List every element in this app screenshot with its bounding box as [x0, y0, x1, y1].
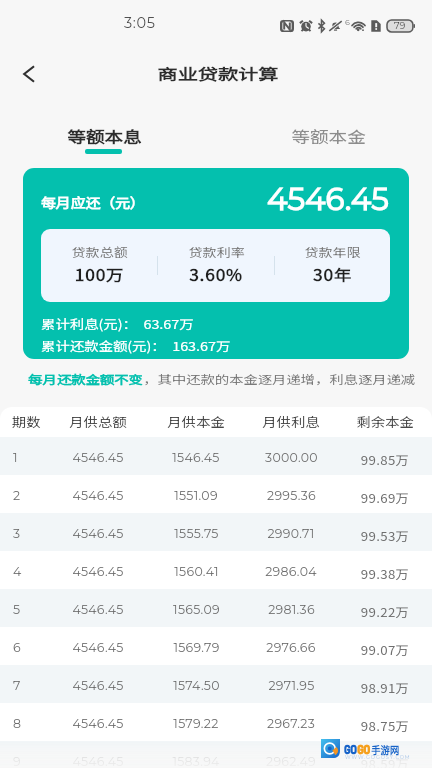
staticText: 4546.45: [72, 678, 124, 693]
staticText: 6: [345, 17, 350, 27]
button[interactable]: 等额本息: [40, 112, 168, 157]
staticText: 累计利息(元)： 63.67万: [41, 314, 194, 332]
staticText: 1551.09: [174, 488, 218, 503]
staticText: 4546.45: [72, 716, 124, 731]
button[interactable]: 8: [0, 703, 432, 741]
button[interactable]: 9: [0, 741, 432, 768]
staticText: 4546.45: [72, 450, 124, 465]
staticText: 9: [13, 754, 21, 768]
staticText: 等额本金: [291, 124, 366, 147]
staticText: 4546.45: [267, 180, 389, 218]
button[interactable]: 等额本金: [264, 112, 392, 157]
staticText: 累计还款金额(元)： 163.67万: [41, 336, 231, 354]
staticText: 99.53万: [361, 526, 409, 544]
staticText: 4546.45: [72, 754, 124, 768]
staticText: 1560.41: [174, 564, 219, 579]
staticText: 剩余本金: [356, 412, 414, 431]
staticText: 2981.36: [268, 602, 315, 617]
staticText: 4546.45: [72, 640, 124, 655]
staticText: 5: [13, 602, 21, 617]
staticText: 1565.09: [173, 602, 220, 617]
staticText: 2967.23: [267, 716, 315, 731]
staticText: 月供总额: [69, 412, 127, 431]
button[interactable]: 6: [0, 627, 432, 665]
staticText: 1555.75: [174, 526, 219, 541]
button[interactable]: 1: [0, 437, 432, 475]
staticText: 1: [13, 450, 18, 465]
staticText: 30年: [313, 263, 352, 285]
staticText: 99.85万: [361, 450, 409, 468]
staticText: 2976.66: [266, 640, 316, 655]
button[interactable]: 3: [0, 513, 432, 551]
staticText: 98.91万: [361, 678, 409, 696]
staticText: 贷款总额: [71, 243, 128, 260]
button[interactable]: Back: [12, 58, 44, 90]
button[interactable]: 7: [0, 665, 432, 703]
staticText: 1569.79: [173, 640, 220, 655]
staticText: 1583.94: [172, 754, 220, 768]
staticText: 99.38万: [361, 564, 409, 582]
staticText: 等额本息: [67, 124, 142, 147]
staticText: 99.07万: [361, 640, 409, 658]
staticText: 3.60%: [189, 263, 243, 285]
staticText: 4: [13, 564, 22, 579]
staticText: 4546.45: [72, 526, 124, 541]
staticText: 99.69万: [361, 488, 409, 506]
staticText: 99.22万: [361, 602, 409, 620]
staticText: 商业贷款计算: [157, 62, 279, 84]
staticText: 1546.45: [172, 450, 220, 465]
staticText: 1574.50: [173, 678, 220, 693]
staticText: 1579.22: [173, 716, 219, 731]
staticText: 期数: [11, 412, 40, 431]
staticText: 2971.95: [268, 678, 315, 693]
staticText: 2986.04: [265, 564, 317, 579]
staticText: 7: [13, 678, 21, 693]
staticText: 3: [13, 526, 21, 541]
staticText: 4546.45: [72, 488, 124, 503]
staticText: 4546.45: [72, 602, 124, 617]
staticText: 100万: [74, 263, 125, 285]
button[interactable]: 5: [0, 589, 432, 627]
staticText: 2995.36: [267, 488, 316, 503]
staticText: GO: [344, 740, 357, 757]
staticText: 月供利息: [262, 412, 320, 431]
staticText: ，其中还款的本金逐月递增，利息逐月递减: [143, 371, 416, 388]
staticText: 每月应还（元）: [41, 192, 145, 212]
staticText: WWW.GOGOSY.COM: [345, 754, 411, 760]
staticText: 3000.00: [265, 450, 318, 465]
staticText: 贷款利率: [188, 243, 245, 260]
button[interactable]: 2: [0, 475, 432, 513]
staticText: 手游网: [371, 742, 399, 757]
staticText: 每月还款金额不变: [28, 371, 143, 388]
staticText: 2: [13, 488, 21, 503]
staticText: 2962.49: [266, 754, 316, 768]
staticText: 8: [13, 716, 21, 731]
staticText: 2990.71: [267, 526, 315, 541]
button[interactable]: 4: [0, 551, 432, 589]
staticText: 3:05: [124, 14, 156, 32]
staticText: 98.75万: [361, 716, 409, 734]
staticText: GO: [357, 740, 370, 757]
staticText: 98.59万: [361, 754, 409, 768]
staticText: 6: [13, 640, 21, 655]
staticText: 贷款年限: [304, 243, 361, 260]
staticText: 79: [394, 20, 406, 32]
staticText: 4546.45: [72, 564, 124, 579]
staticText: 月供本金: [167, 412, 225, 431]
